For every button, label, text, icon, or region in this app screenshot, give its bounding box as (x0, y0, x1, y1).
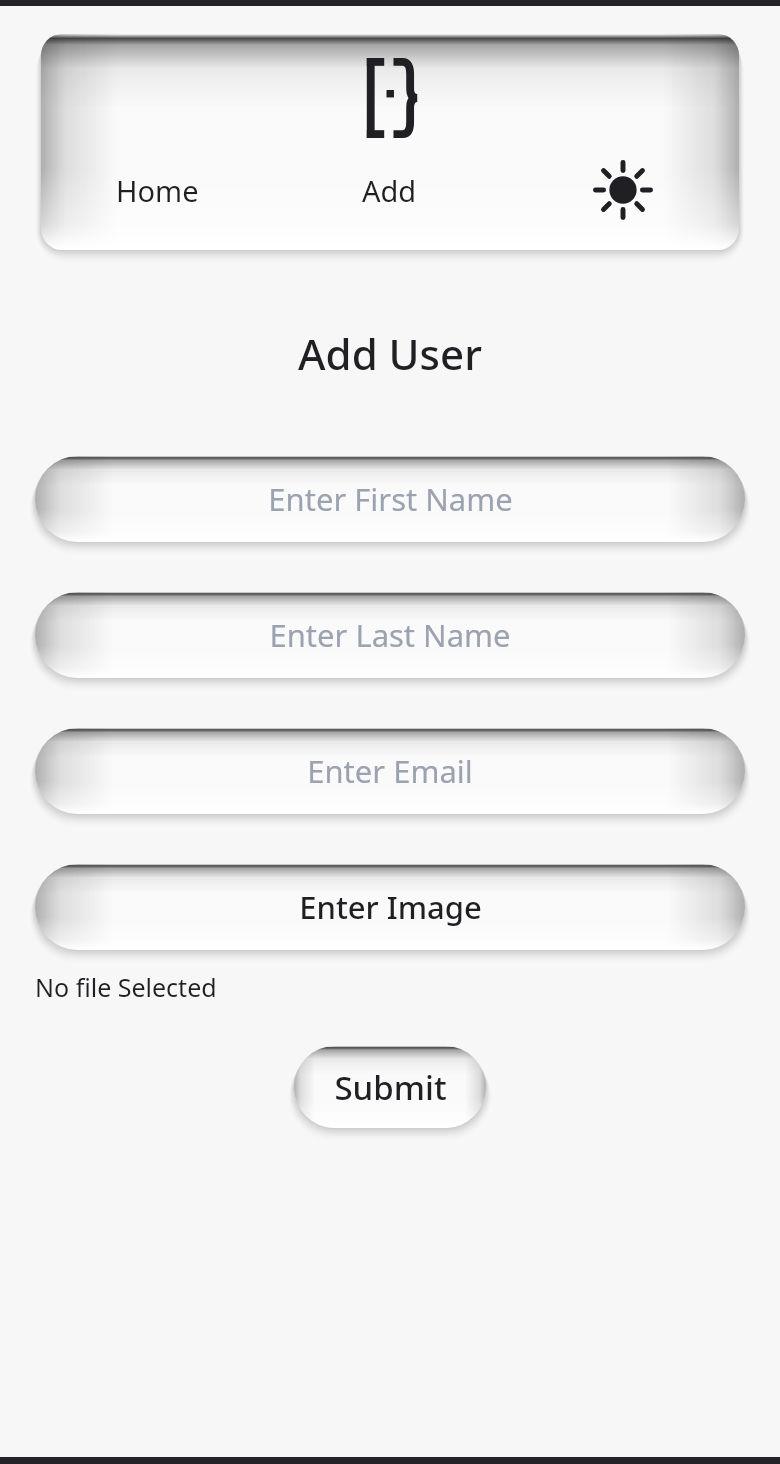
button[interactable]: Enter Last Name (35, 592, 745, 678)
staticText: Enter Email (307, 750, 473, 792)
staticText: Add User (0, 325, 780, 382)
staticText: Enter First Name (268, 478, 513, 520)
staticText: Home (116, 171, 199, 210)
button[interactable]: Home (41, 160, 273, 220)
staticText: Submit (334, 1065, 447, 1110)
button[interactable]: Enter Image (35, 864, 745, 950)
button[interactable]: App logo (359, 56, 421, 140)
staticText: Enter Last Name (269, 614, 511, 656)
button[interactable]: Enter First Name (35, 456, 745, 542)
staticText: Enter Image (299, 886, 482, 928)
button[interactable]: Enter Email (35, 728, 745, 814)
staticText: No file Selected (35, 970, 217, 1004)
staticText: Add (362, 171, 417, 210)
button[interactable]: Add (273, 160, 506, 220)
button[interactable]: Submit (294, 1046, 486, 1128)
button[interactable]: Toggle theme (506, 160, 739, 220)
